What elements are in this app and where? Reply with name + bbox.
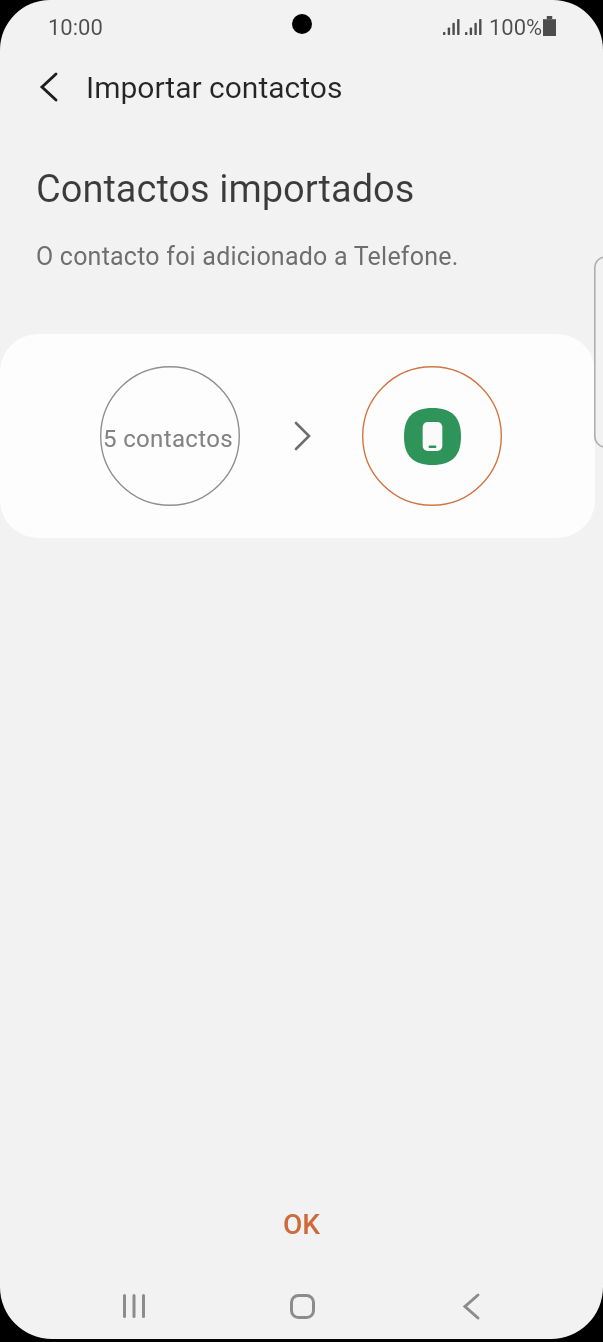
staticText: 100%: [489, 15, 543, 41]
button[interactable]: Home: [246, 1268, 358, 1339]
button[interactable]: 5 contactos: [0, 334, 595, 538]
button[interactable]: OK: [247, 1192, 356, 1257]
button[interactable]: Back: [20, 58, 78, 116]
staticText: OK: [283, 1208, 320, 1241]
staticText: 10:00: [48, 15, 103, 41]
button[interactable]: Recent apps: [78, 1268, 190, 1339]
staticText: Importar contactos: [86, 70, 343, 105]
button[interactable]: Back: [415, 1268, 527, 1339]
staticText: O contacto foi adicionado a Telefone.: [36, 242, 459, 271]
staticText: Contactos importados: [36, 167, 415, 212]
staticText: 5 contactos: [103, 425, 233, 453]
